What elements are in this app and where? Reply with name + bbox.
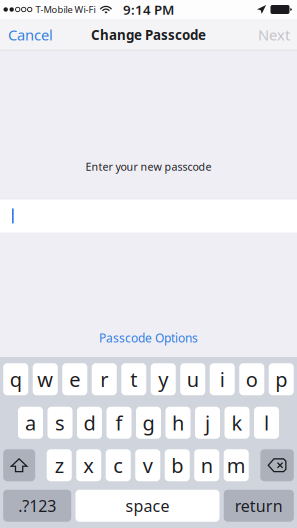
button[interactable]: .?123 — [3, 490, 71, 522]
staticText: b — [171, 452, 183, 479]
button[interactable]: Delete — [260, 449, 294, 481]
staticText: p — [275, 366, 287, 393]
button[interactable]: r — [92, 363, 117, 395]
button[interactable]: u — [180, 363, 205, 395]
staticText: c — [113, 452, 123, 479]
staticText: .?123 — [18, 495, 56, 516]
staticText: u — [187, 366, 199, 393]
button[interactable]: v — [135, 449, 160, 481]
button[interactable]: n — [194, 449, 219, 481]
button[interactable]: e — [62, 363, 87, 395]
staticText: o — [246, 366, 258, 393]
staticText: a — [25, 409, 36, 436]
staticText: e — [69, 366, 80, 393]
button[interactable]: Next — [250, 19, 297, 50]
button[interactable]: c — [106, 449, 131, 481]
staticText: n — [201, 452, 213, 479]
staticText: j — [205, 409, 210, 436]
staticText: h — [172, 409, 184, 436]
button[interactable]: k — [224, 407, 249, 439]
button[interactable]: return — [224, 490, 294, 522]
button[interactable]: m — [224, 449, 249, 481]
staticText: space — [125, 495, 169, 516]
button[interactable]: Passcode Options — [89, 326, 208, 350]
button[interactable]: Cancel — [0, 19, 56, 50]
staticText: v — [143, 452, 153, 479]
staticText: f — [115, 409, 122, 436]
staticText: i — [220, 366, 225, 393]
staticText: s — [55, 409, 65, 436]
staticText: d — [83, 409, 95, 436]
staticText: k — [231, 409, 242, 436]
staticText: Cancel — [8, 25, 53, 44]
staticText: Enter your new passcode — [85, 160, 211, 174]
button[interactable]: i — [210, 363, 235, 395]
button[interactable]: l — [254, 407, 279, 439]
staticText: Change Passcode — [91, 26, 206, 44]
staticText: q — [10, 366, 22, 393]
staticText: Passcode Options — [99, 330, 198, 346]
staticText: x — [83, 452, 94, 479]
button[interactable]: o — [239, 363, 264, 395]
button[interactable]: y — [151, 363, 176, 395]
button[interactable]: g — [136, 407, 161, 439]
staticText: w — [37, 366, 53, 393]
button[interactable]: Shift — [3, 449, 35, 481]
button[interactable]: t — [121, 363, 146, 395]
button[interactable]: j — [195, 407, 220, 439]
staticText: return — [235, 495, 283, 516]
button[interactable]: w — [33, 363, 58, 395]
staticText: z — [55, 452, 64, 479]
button[interactable]: b — [165, 449, 190, 481]
staticText: 9:14 PM — [123, 1, 174, 18]
button[interactable]: a — [18, 407, 43, 439]
staticText: y — [158, 366, 168, 393]
staticText: t — [130, 366, 137, 393]
button[interactable]: s — [47, 407, 72, 439]
staticText: l — [264, 409, 269, 436]
staticText: r — [100, 366, 108, 393]
button[interactable]: q — [3, 363, 28, 395]
button[interactable]: f — [106, 407, 131, 439]
button[interactable]: d — [77, 407, 102, 439]
button[interactable]: p — [269, 363, 294, 395]
button[interactable]: z — [47, 449, 72, 481]
staticText: g — [142, 409, 154, 436]
button[interactable]: x — [76, 449, 101, 481]
staticText: T-Mobile Wi-Fi — [35, 3, 95, 16]
button[interactable]: h — [165, 407, 190, 439]
staticText: Next — [258, 25, 290, 44]
button[interactable]: space — [75, 490, 219, 522]
staticText: m — [227, 452, 246, 479]
